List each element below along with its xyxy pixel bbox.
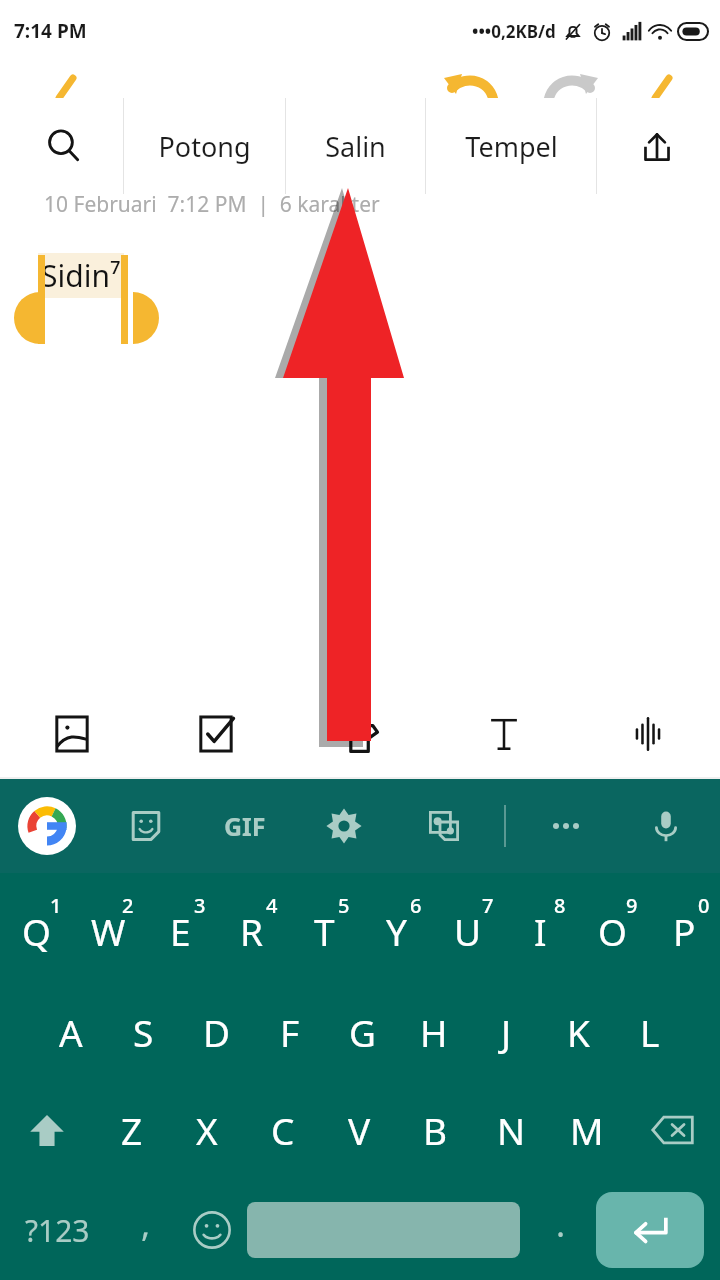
staticText: G [349,1007,376,1057]
button[interactable]: Shift [0,1079,94,1180]
staticText: •••0,2KB/d [472,20,556,43]
staticText: F [280,1007,300,1057]
staticText: J [501,1007,512,1057]
button[interactable]: Potong [124,98,285,194]
button[interactable]: H [398,978,470,1079]
staticText: 7:14 PM [14,18,87,44]
staticText: 3 [194,892,206,919]
staticText: T [314,906,335,956]
staticText: 4 [266,892,278,919]
button[interactable]: Emoji [177,1180,247,1280]
button[interactable]: Text format [432,690,576,778]
button[interactable]: C [245,1079,321,1180]
staticText: 8 [554,892,566,919]
staticText: K [567,1007,590,1057]
button[interactable]: Tempel [426,98,596,194]
button[interactable]: GIF [220,805,270,847]
staticText: E [170,906,191,956]
button[interactable]: Q [0,877,72,978]
staticText: . [556,1201,566,1247]
button[interactable]: V [321,1079,397,1180]
staticText: 10 Februari 7:12 PM | 6 karakter [44,190,380,219]
staticText: B [423,1105,448,1155]
staticText: W [91,906,126,956]
button[interactable]: Backspace [625,1079,720,1180]
staticText: M [570,1105,604,1155]
button[interactable]: Voice input [640,800,692,852]
staticText: P [673,906,696,956]
button[interactable]: E [144,877,216,978]
button[interactable]: X [169,1079,245,1180]
staticText: ?123 [25,1210,90,1251]
button[interactable]: Search [4,98,123,194]
staticText: 9 [626,892,638,919]
staticText: 7 [482,892,494,919]
staticText: 5 [338,892,350,919]
button[interactable]: Draw [288,690,432,778]
button[interactable]: K [542,978,614,1079]
button[interactable]: Voice [576,690,720,778]
button[interactable]: Translate [418,800,470,852]
button[interactable]: Checklist [144,690,288,778]
button[interactable]: R [216,877,288,978]
staticText: N [497,1105,526,1155]
button[interactable]: ?123 [0,1180,115,1280]
button[interactable]: D [180,978,253,1079]
button[interactable]: O [576,877,648,978]
button[interactable]: F [253,978,326,1079]
staticText: D [203,1007,231,1057]
button[interactable]: Salin [286,98,425,194]
button[interactable]: A [34,978,107,1079]
button[interactable]: Space [247,1202,520,1258]
staticText: Y [386,906,407,956]
staticText: 2 [122,892,134,919]
button[interactable]: Stickers [120,800,172,852]
button[interactable]: N [473,1079,549,1180]
button[interactable]: Z [94,1079,169,1180]
staticText: A [59,1007,83,1057]
button[interactable]: S [107,978,180,1079]
staticText: Salin [325,128,386,165]
staticText: H [420,1007,448,1057]
staticText: U [454,906,482,956]
staticText: I [534,906,547,956]
button[interactable]: P [648,877,720,978]
button[interactable]: B [397,1079,473,1180]
button[interactable]: , [115,1180,177,1280]
staticText: C [271,1105,295,1155]
staticText: X [196,1105,218,1155]
button[interactable]: Insert image [0,690,144,778]
staticText: Z [121,1105,143,1155]
button[interactable]: More [540,800,592,852]
staticText: Q [22,906,51,956]
staticText: 6 [410,892,422,919]
button[interactable]: Settings [318,800,370,852]
button[interactable]: Share [597,98,716,194]
button[interactable]: Y [360,877,432,978]
staticText: Sidin⁷ [41,255,121,296]
button[interactable]: Enter [596,1192,704,1268]
button[interactable]: W [72,877,144,978]
staticText: 0 [698,892,710,919]
staticText: Tempel [465,128,558,165]
button[interactable]: U [432,877,504,978]
button[interactable]: . [526,1180,596,1280]
staticText: , [141,1201,151,1247]
button[interactable]: I [504,877,576,978]
button[interactable]: J [470,978,542,1079]
button[interactable]: L [614,978,686,1079]
staticText: V [348,1105,371,1155]
button[interactable]: M [549,1079,625,1180]
staticText: S [133,1007,154,1057]
button[interactable]: T [288,877,360,978]
button[interactable]: G [326,978,398,1079]
staticText: R [240,906,264,956]
staticText: Potong [158,128,251,165]
staticText: 1 [50,892,62,919]
staticText: O [598,906,627,956]
staticText: L [640,1007,660,1057]
staticText: GIF [224,809,266,843]
button[interactable]: Google [18,797,76,855]
